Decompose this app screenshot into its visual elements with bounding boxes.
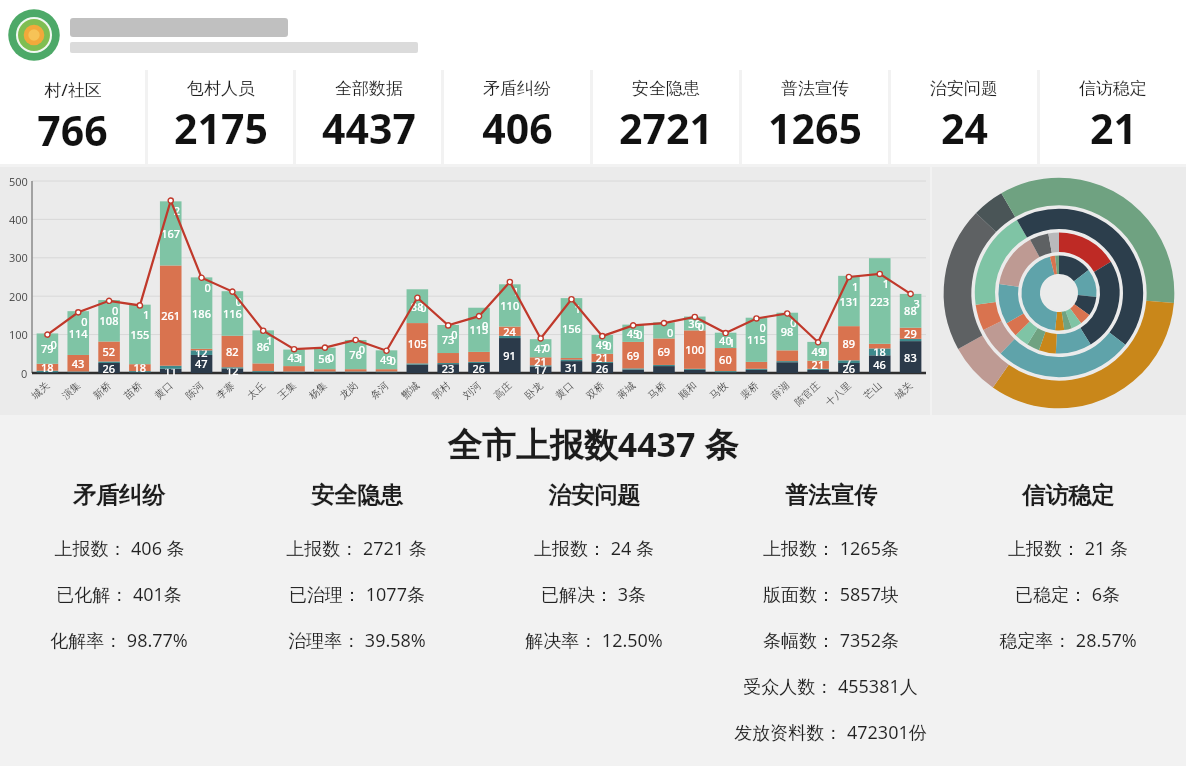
staticText: 2175 [174, 100, 268, 156]
staticText: 普法宣传 [785, 481, 877, 510]
staticText: 化解率： 98.77% [50, 628, 188, 653]
staticText: 766 [37, 102, 108, 158]
button[interactable]: 信访稳定 [1040, 70, 1186, 164]
staticText: 信访稳定 [1079, 78, 1147, 99]
button[interactable]: 包村人员 [148, 70, 293, 164]
staticText: 上报数： 21 条 [1008, 536, 1128, 561]
button[interactable]: 全部数据 [296, 70, 441, 164]
staticText: 矛盾纠纷 [483, 78, 551, 99]
staticText: 24 [941, 100, 988, 156]
button[interactable]: 安全隐患 [238, 481, 475, 674]
staticText: 版面数： 5857块 [763, 582, 899, 607]
staticText: 上报数： 406 条 [54, 536, 185, 561]
staticText: 上报数： 24 条 [534, 536, 654, 561]
button[interactable]: 治安问题 [891, 70, 1037, 164]
staticText: 21 [1090, 100, 1137, 156]
staticText: 2721 [619, 100, 713, 156]
staticText: 已化解： 401条 [56, 582, 182, 607]
staticText: 受众人数： 455381人 [743, 674, 918, 699]
staticText: 4437 [322, 100, 416, 156]
staticText: 全部数据 [335, 78, 403, 99]
button[interactable]: 普法宣传 [712, 481, 949, 766]
staticText: 治安问题 [548, 481, 640, 510]
staticText: 发放资料数： 472301份 [734, 720, 927, 745]
button[interactable]: 普法宣传 [742, 70, 888, 164]
staticText: 矛盾纠纷 [73, 481, 165, 510]
staticText: 普法宣传 [781, 78, 849, 99]
staticText: 安全隐患 [311, 481, 403, 510]
button[interactable]: 村/社区 [0, 70, 145, 164]
staticText: 信访稳定 [1022, 481, 1114, 510]
button[interactable]: 安全隐患 [593, 70, 739, 164]
staticText: 已解决： 3条 [541, 582, 646, 607]
staticText: 全市上报数4437 条 [0, 421, 1186, 467]
staticText: 包村人员 [187, 78, 255, 99]
button[interactable]: 各乡镇上报数柱状图 [0, 167, 930, 415]
button[interactable]: 治安问题 [475, 481, 712, 674]
staticText: 治安问题 [930, 78, 998, 99]
staticText: 上报数： 2721 条 [286, 536, 427, 561]
button[interactable]: 信访稳定 [949, 481, 1186, 674]
staticText: 村/社区 [44, 78, 102, 101]
staticText: 条幅数： 7352条 [763, 628, 899, 653]
staticText: 406 [482, 100, 553, 156]
staticText: 解决率： 12.50% [525, 628, 663, 653]
button[interactable]: 分类占比环形图 [932, 167, 1186, 415]
staticText: 治理率： 39.58% [288, 628, 426, 653]
staticText: 已稳定： 6条 [1015, 582, 1120, 607]
staticText: 1265 [768, 100, 862, 156]
staticText: 上报数： 1265条 [763, 536, 899, 561]
staticText: 已治理： 1077条 [289, 582, 425, 607]
staticText: 安全隐患 [632, 78, 700, 99]
button[interactable]: 矛盾纠纷 [444, 70, 590, 164]
button[interactable]: 矛盾纠纷 [0, 481, 238, 674]
staticText: 稳定率： 28.57% [999, 628, 1137, 653]
